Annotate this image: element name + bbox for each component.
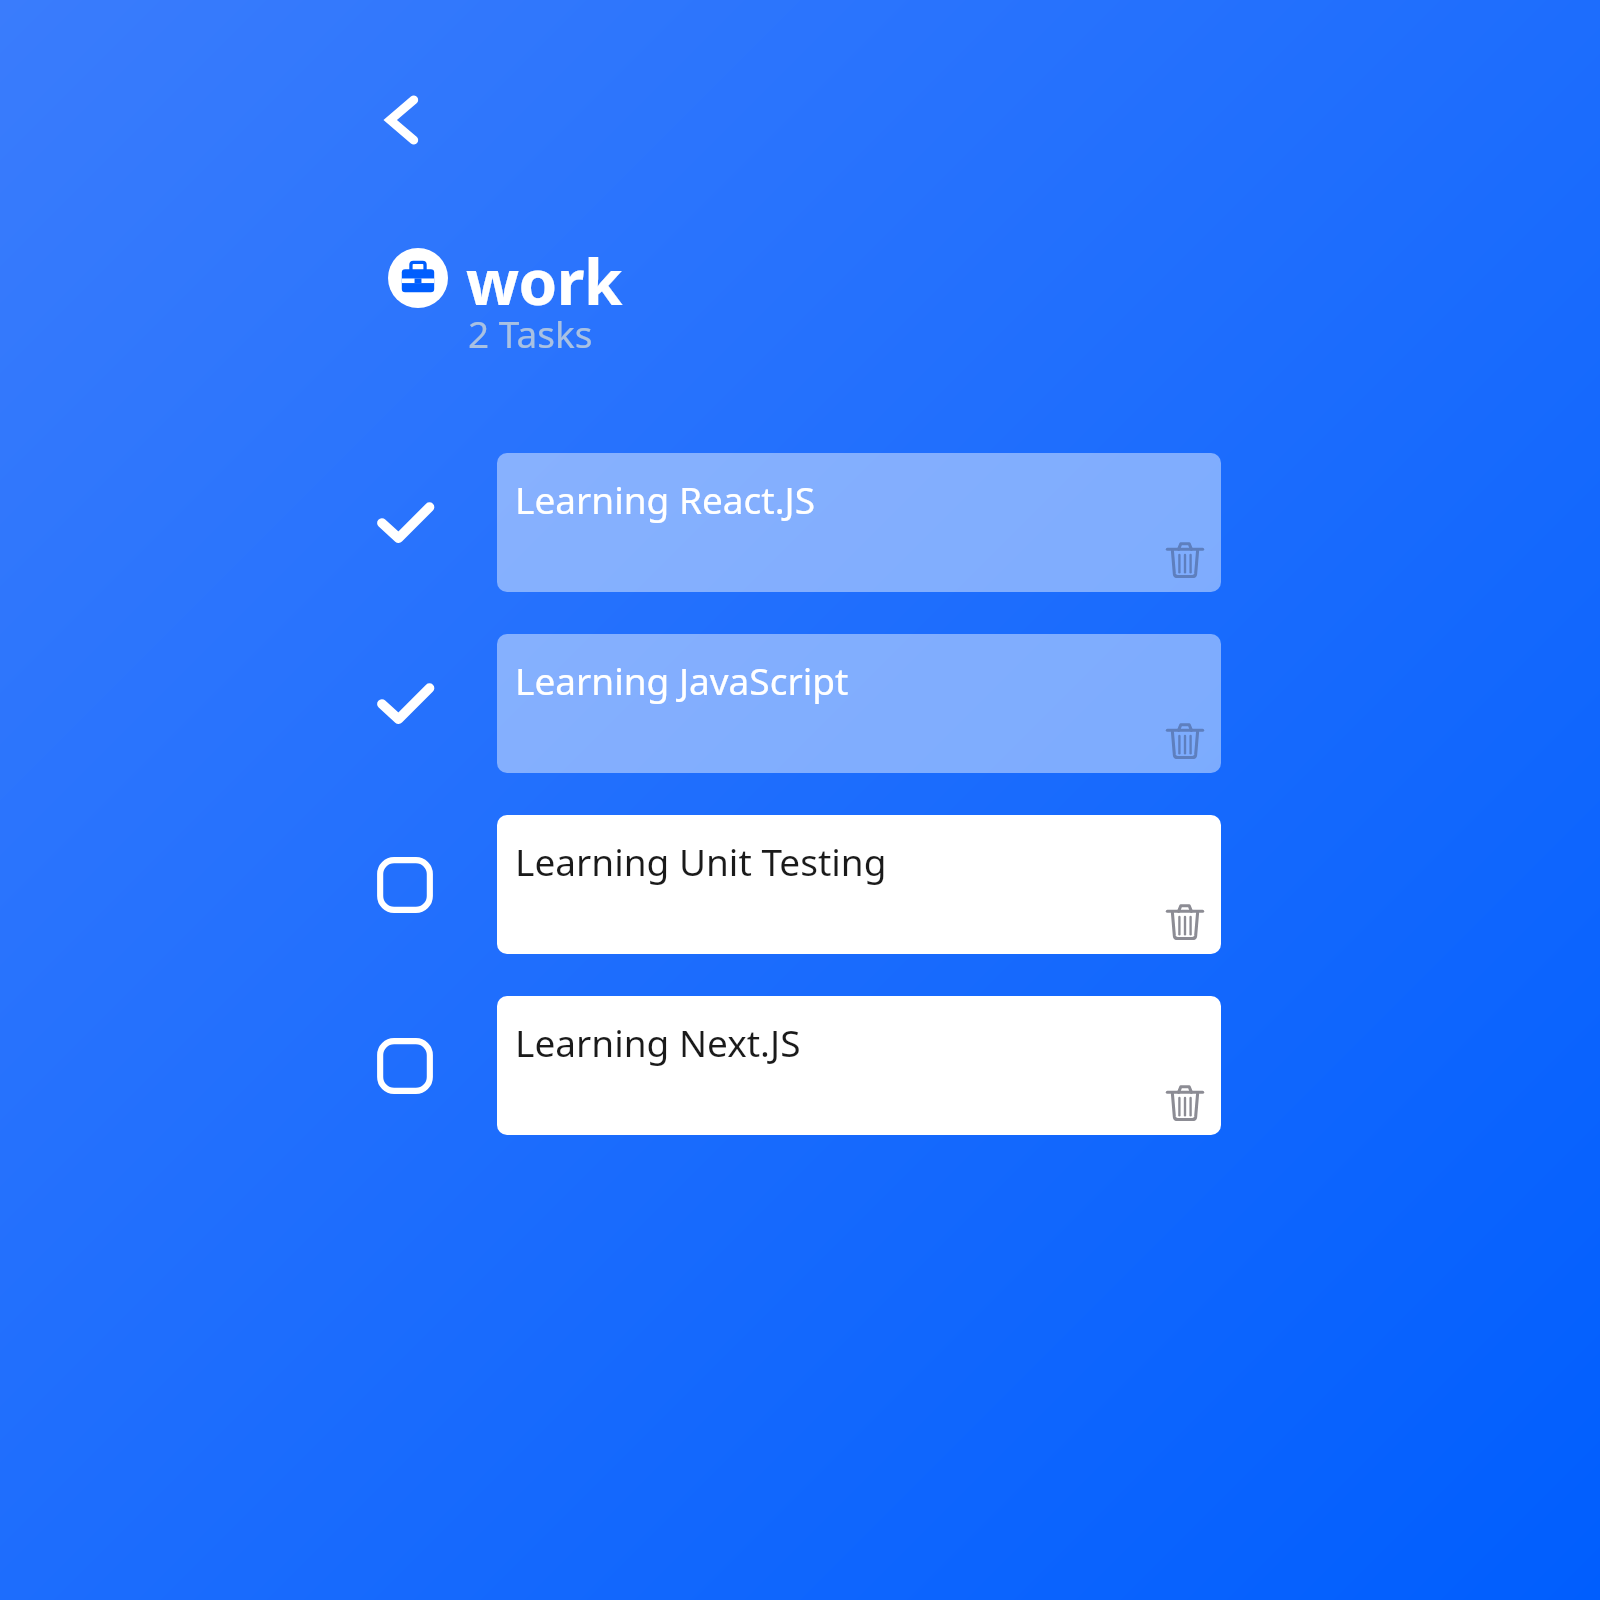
- button[interactable]: Mark complete: [369, 1030, 441, 1102]
- button[interactable]: Delete Learning React.JS: [1157, 530, 1213, 586]
- staticText: Learning Next.JS: [515, 1017, 801, 1067]
- staticText: Learning Unit Testing: [515, 836, 887, 886]
- staticText: work: [466, 239, 622, 323]
- button[interactable]: Back: [360, 78, 444, 162]
- button[interactable]: Learning JavaScript: [497, 634, 1221, 773]
- button[interactable]: Completed: [369, 668, 441, 740]
- button[interactable]: Mark complete: [369, 849, 441, 921]
- button[interactable]: Delete Learning Unit Testing: [1157, 892, 1213, 948]
- button[interactable]: Learning Unit Testing: [497, 815, 1221, 954]
- button[interactable]: Learning React.JS: [497, 453, 1221, 592]
- staticText: Learning React.JS: [515, 474, 816, 524]
- button[interactable]: Delete Learning JavaScript: [1157, 711, 1213, 767]
- staticText: Learning JavaScript: [515, 655, 849, 705]
- button[interactable]: Delete Learning Next.JS: [1157, 1073, 1213, 1129]
- staticText: 2 Tasks: [468, 308, 593, 358]
- button[interactable]: Learning Next.JS: [497, 996, 1221, 1135]
- button[interactable]: Completed: [369, 487, 441, 559]
